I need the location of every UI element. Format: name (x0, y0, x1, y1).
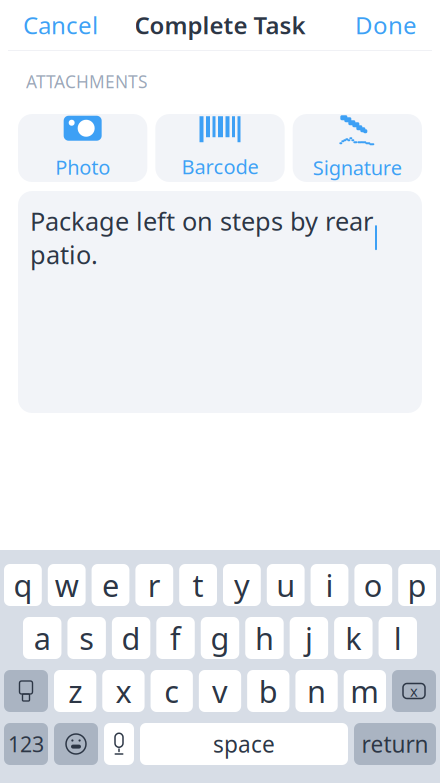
button[interactable]: h (245, 617, 284, 659)
button[interactable]: Barcode (155, 114, 285, 182)
button[interactable]: w (48, 564, 86, 606)
button[interactable]: l (379, 617, 417, 659)
button[interactable]: e (92, 564, 129, 606)
button[interactable]: u (267, 564, 305, 606)
button[interactable]: y (223, 564, 261, 606)
staticText: h (255, 618, 274, 658)
button[interactable]: c (151, 670, 193, 712)
button[interactable]: Emoji (54, 723, 98, 765)
button[interactable]: d (112, 617, 150, 659)
button[interactable]: Dictate (104, 723, 134, 765)
staticText: v (212, 671, 228, 711)
staticText: i (325, 565, 333, 605)
staticText: f (170, 618, 181, 658)
staticText: Barcode (181, 153, 258, 180)
staticText: z (68, 671, 82, 711)
staticText: y (234, 565, 250, 605)
button[interactable]: v (199, 670, 241, 712)
staticText: n (307, 671, 326, 711)
button[interactable]: a (23, 617, 61, 659)
staticText: k (345, 618, 361, 658)
staticText: Package left on steps by rear patio. (30, 204, 373, 271)
staticText: p (408, 565, 427, 605)
button[interactable]: Photo (18, 114, 147, 182)
staticText: w (55, 565, 79, 605)
staticText: u (276, 565, 295, 605)
button[interactable]: n (295, 670, 338, 712)
staticText: q (13, 565, 32, 605)
staticText: Cancel (23, 9, 98, 41)
staticText: e (102, 565, 119, 605)
button[interactable]: q (4, 564, 42, 606)
staticText: j (305, 618, 313, 658)
button[interactable]: f (156, 617, 195, 659)
button[interactable]: Delete (392, 670, 436, 712)
staticText: ATTACHMENTS (26, 70, 148, 93)
button[interactable]: 123 (4, 723, 48, 765)
staticText: a (34, 618, 51, 658)
button[interactable]: Cancel (17, 0, 104, 51)
staticText: t (193, 565, 204, 605)
button[interactable]: j (290, 617, 328, 659)
staticText: s (79, 618, 94, 658)
staticText: space (213, 729, 275, 759)
button[interactable]: t (179, 564, 217, 606)
staticText: b (259, 671, 278, 711)
button[interactable]: o (354, 564, 392, 606)
staticText: Done (355, 9, 417, 41)
button[interactable]: m (344, 670, 386, 712)
staticText: 123 (8, 730, 44, 758)
button[interactable]: r (135, 564, 173, 606)
staticText: Photo (55, 154, 110, 180)
staticText: c (164, 671, 179, 711)
button[interactable]: g (201, 617, 239, 659)
button[interactable]: Done (349, 0, 423, 51)
staticText: Complete Task (134, 9, 305, 41)
staticText: x (115, 671, 131, 711)
staticText: o (364, 565, 383, 605)
staticText: d (122, 618, 141, 658)
button[interactable]: b (247, 670, 289, 712)
button[interactable]: s (67, 617, 106, 659)
button[interactable]: i (311, 564, 348, 606)
button[interactable]: x (102, 670, 145, 712)
staticText: m (350, 671, 379, 711)
staticText: g (210, 618, 229, 658)
button[interactable]: Shift (4, 670, 48, 712)
staticText: r (148, 565, 161, 605)
button[interactable]: p (398, 564, 436, 606)
staticText: return (361, 729, 428, 759)
button[interactable]: space (140, 723, 348, 765)
button[interactable]: return (354, 723, 436, 765)
staticText: x (410, 681, 418, 701)
button[interactable]: k (334, 617, 372, 659)
staticText: Signature (313, 154, 402, 181)
button[interactable]: z (54, 670, 96, 712)
button[interactable]: Signature (293, 114, 422, 182)
staticText: l (394, 618, 402, 658)
